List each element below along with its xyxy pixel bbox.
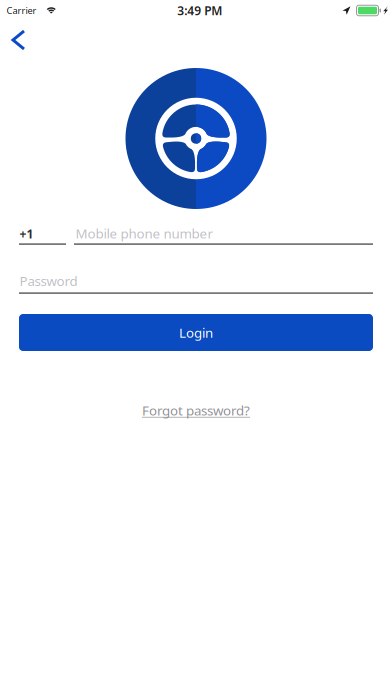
button[interactable]: Forgot password? — [0, 401, 392, 419]
staticText: Carrier — [6, 4, 36, 17]
staticText: +1 — [19, 226, 33, 242]
button[interactable]: Back — [0, 21, 44, 59]
staticText: Password — [19, 272, 77, 290]
staticText: Forgot password? — [142, 401, 250, 419]
button[interactable]: Login — [19, 314, 373, 351]
staticText: 3:49 PM — [177, 2, 222, 18]
staticText: Mobile phone number — [75, 224, 213, 242]
staticText: Login — [179, 324, 213, 341]
